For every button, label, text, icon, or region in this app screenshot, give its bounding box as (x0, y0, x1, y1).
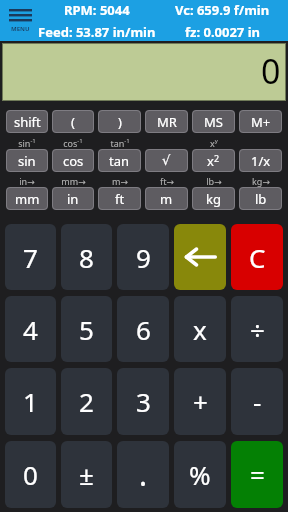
button[interactable]: shift (6, 110, 48, 133)
staticText: C (249, 240, 266, 275)
staticText: 0 (261, 48, 281, 94)
staticText: M+ (251, 113, 271, 131)
staticText: MS (204, 113, 223, 131)
staticText: 1/x (251, 152, 271, 170)
button[interactable]: 2 (61, 368, 112, 435)
staticText: 1 (23, 384, 38, 419)
staticText: x2 (207, 152, 220, 170)
staticText: 3 (136, 384, 151, 419)
staticText: 5 (79, 312, 94, 347)
staticText: Feed: 53.87 in/min (38, 23, 156, 41)
button[interactable]: 3 (117, 368, 169, 435)
staticText: 9 (136, 240, 151, 275)
button[interactable]: ) (98, 110, 141, 133)
button[interactable]: m (145, 187, 188, 210)
button[interactable]: x (174, 296, 226, 362)
button[interactable]: √ (145, 149, 188, 172)
button[interactable]: lb (239, 187, 282, 210)
staticText: mm→ (61, 175, 86, 187)
staticText: lb (255, 190, 267, 208)
staticText: + (193, 384, 208, 419)
button[interactable]: cos (52, 149, 94, 172)
staticText: cos (63, 152, 84, 170)
staticText: 4 (23, 312, 38, 347)
staticText: Vc: 659.9 f/min (175, 1, 270, 19)
button[interactable]: MR (145, 110, 188, 133)
button[interactable]: 4 (5, 296, 56, 362)
staticText: m→ (112, 175, 128, 187)
staticText: = (250, 457, 265, 492)
staticText: % (189, 457, 211, 492)
staticText: 8 (79, 240, 94, 275)
button[interactable]: mm (6, 187, 48, 210)
staticText: lb→ (206, 175, 222, 187)
button[interactable]: 0 (2, 43, 286, 101)
button[interactable]: . (117, 441, 169, 508)
staticText: sin-1 (18, 137, 36, 149)
button[interactable]: x2 (192, 149, 235, 172)
button[interactable]: 5 (61, 296, 112, 362)
button[interactable]: - (231, 368, 283, 435)
button[interactable]: Backspace (174, 224, 226, 290)
staticText: sin (18, 152, 36, 170)
staticText: √ (162, 153, 171, 168)
staticText: kg (206, 190, 221, 208)
staticText: MENU (11, 25, 30, 33)
button[interactable]: Menu (3, 0, 37, 41)
staticText: 2 (79, 384, 94, 419)
staticText: cos-1 (63, 137, 83, 149)
button[interactable]: 9 (117, 224, 169, 290)
button[interactable]: 1 (5, 368, 56, 435)
button[interactable]: 7 (5, 224, 56, 290)
button[interactable]: 0 (5, 441, 56, 508)
button[interactable]: ft (98, 187, 141, 210)
button[interactable]: ( (52, 110, 94, 133)
button[interactable]: 6 (117, 296, 169, 362)
staticText: ) (118, 113, 122, 131)
staticText: ± (79, 457, 94, 492)
staticText: shift (14, 113, 41, 131)
staticText: 0 (23, 457, 38, 492)
button[interactable]: + (174, 368, 226, 435)
staticText: fz: 0.0027 in (185, 23, 261, 41)
button[interactable]: ± (61, 441, 112, 508)
button[interactable]: 8 (61, 224, 112, 290)
staticText: mm (15, 190, 40, 208)
staticText: RPM: 5044 (64, 1, 130, 19)
staticText: m (160, 190, 173, 208)
button[interactable]: = (231, 441, 283, 508)
staticText: in (67, 190, 79, 208)
staticText: tan (109, 152, 130, 170)
staticText: xy (210, 137, 218, 149)
button[interactable]: MS (192, 110, 235, 133)
staticText: MR (157, 113, 177, 131)
staticText: in→ (19, 175, 35, 187)
staticText: kg→ (252, 175, 270, 187)
button[interactable]: tan (98, 149, 141, 172)
staticText: ÷ (250, 312, 265, 347)
staticText: - (253, 384, 262, 419)
staticText: 6 (136, 312, 151, 347)
button[interactable]: in (52, 187, 94, 210)
button[interactable]: sin (6, 149, 48, 172)
staticText: ft→ (160, 175, 174, 187)
button[interactable]: M+ (239, 110, 282, 133)
staticText: 7 (23, 240, 38, 275)
staticText: . (139, 454, 148, 495)
button[interactable]: 1/x (239, 149, 282, 172)
button[interactable]: % (174, 441, 226, 508)
staticText: x (193, 312, 207, 347)
staticText: tan-1 (110, 137, 130, 149)
button[interactable]: ÷ (231, 296, 283, 362)
button[interactable]: C (231, 224, 283, 290)
button[interactable]: kg (192, 187, 235, 210)
staticText: ft (115, 190, 125, 208)
staticText: ( (71, 113, 75, 131)
